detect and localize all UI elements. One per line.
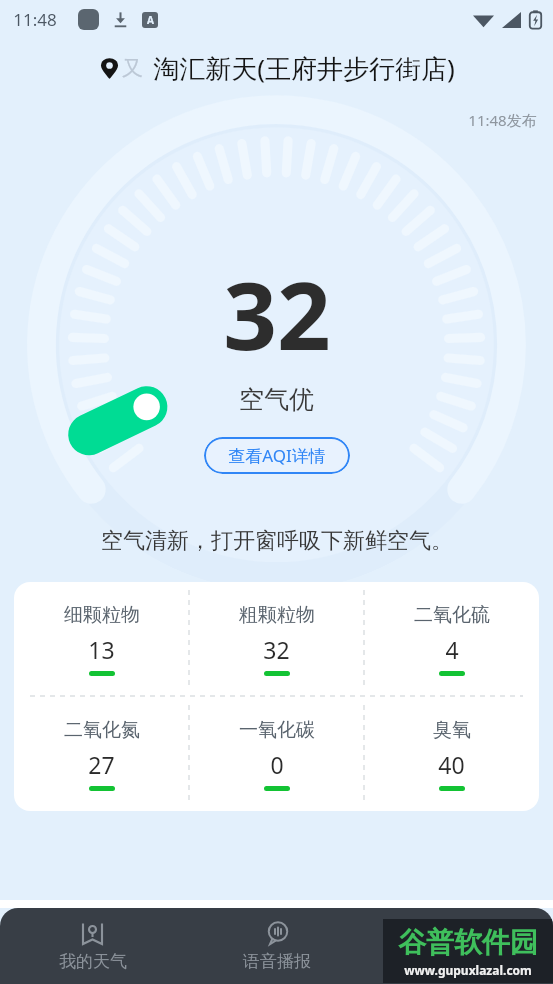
staticText: 二氧化氮: [64, 718, 140, 742]
staticText: 0: [270, 749, 284, 780]
button[interactable]: 粗颗粒物: [189, 582, 364, 696]
staticText: 臭氧: [433, 718, 471, 742]
staticText: 40: [438, 749, 465, 780]
staticText: A: [147, 13, 154, 27]
staticText: 27: [88, 749, 115, 780]
staticText: 二氧化硫: [414, 603, 490, 627]
staticText: 细颗粒物: [64, 603, 140, 627]
staticText: 32: [263, 634, 290, 665]
button[interactable]: 二氧化氮: [14, 697, 189, 811]
staticText: 11:48发布: [468, 110, 537, 130]
staticText: 11:48: [13, 8, 57, 31]
button[interactable]: 臭氧: [364, 697, 539, 811]
staticText: 一氧化碳: [239, 718, 315, 742]
staticText: 谷普软件园: [398, 925, 538, 960]
button[interactable]: 细颗粒物: [14, 582, 189, 696]
staticText: 空气质量: [427, 951, 495, 972]
staticText: 32: [223, 250, 331, 378]
staticText: 13: [88, 634, 115, 665]
staticText: 语音播报: [243, 951, 311, 972]
staticText: 查看AQI详情: [228, 444, 326, 467]
button[interactable]: 二氧化硫: [364, 582, 539, 696]
staticText: 又: [122, 55, 143, 81]
staticText: 4: [445, 634, 459, 665]
staticText: www.gupuxlazal.com: [404, 962, 532, 978]
button[interactable]: 语音播报: [185, 908, 369, 984]
staticText: 淘汇新天(王府井步行街店): [153, 50, 455, 86]
staticText: 粗颗粒物: [239, 603, 315, 627]
staticText: 我的天气: [59, 951, 127, 972]
staticText: 空气优: [239, 384, 314, 415]
button[interactable]: 一氧化碳: [189, 697, 364, 811]
staticText: 空气清新，打开窗呼吸下新鲜空气。: [101, 527, 453, 555]
button[interactable]: 查看AQI详情: [204, 437, 350, 474]
button[interactable]: 空气质量: [369, 908, 553, 984]
button[interactable]: 我的天气: [0, 908, 185, 984]
